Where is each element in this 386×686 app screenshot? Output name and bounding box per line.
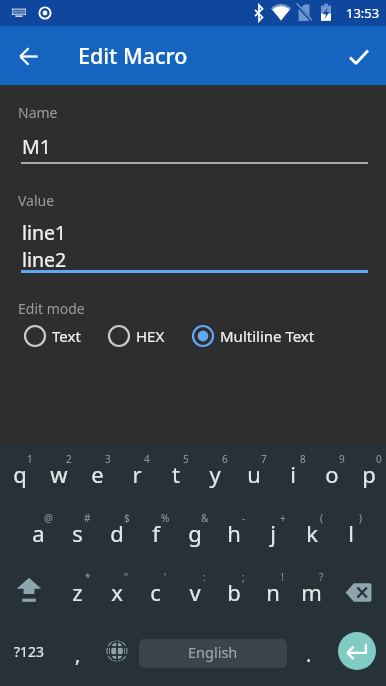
staticText: line1 — [22, 219, 67, 246]
staticText: c — [150, 577, 161, 607]
button[interactable]: a — [19, 504, 58, 560]
button[interactable]: o — [312, 446, 351, 504]
button[interactable]: t — [156, 446, 195, 504]
staticText: 1 — [27, 452, 33, 466]
button[interactable]: s — [58, 504, 97, 560]
button[interactable]: u — [234, 446, 273, 504]
staticText: Edit mode — [18, 299, 85, 318]
staticText: b — [227, 577, 241, 607]
button[interactable]: q — [0, 446, 39, 504]
staticText: h — [227, 518, 241, 548]
button[interactable]: w — [39, 446, 78, 504]
staticText: Text — [52, 326, 81, 346]
staticText: ! — [281, 570, 284, 584]
button[interactable]: g — [175, 504, 214, 560]
staticText: f — [152, 518, 160, 548]
staticText: w — [50, 459, 68, 489]
staticText: $ — [124, 511, 130, 525]
button[interactable]: i — [273, 446, 312, 504]
staticText: s — [72, 518, 83, 548]
staticText: % — [161, 511, 170, 525]
button[interactable]: m — [292, 560, 331, 616]
staticText: r — [132, 459, 142, 489]
staticText: @ — [44, 511, 53, 525]
button[interactable]: v — [175, 560, 214, 616]
staticText: 3 — [105, 452, 111, 466]
staticText: Value — [18, 191, 55, 210]
staticText: ? — [319, 570, 324, 584]
staticText: 7 — [261, 452, 267, 466]
staticText: + — [280, 511, 286, 525]
button[interactable]: r — [117, 446, 156, 504]
button[interactable]: Shift — [0, 560, 58, 616]
staticText: line2 — [22, 246, 67, 273]
button[interactable]: l — [331, 504, 370, 560]
button[interactable]: , — [59, 616, 97, 686]
staticText: 13:53 — [346, 4, 380, 22]
staticText: y — [209, 459, 221, 489]
button[interactable]: x — [97, 560, 136, 616]
staticText: d — [110, 518, 124, 548]
button[interactable]: Enter — [327, 616, 386, 686]
staticText: g — [188, 518, 202, 548]
staticText: Edit Macro — [78, 41, 188, 70]
button[interactable]: k — [292, 504, 331, 560]
staticText: 8 — [300, 452, 306, 466]
button[interactable]: Text — [23, 324, 81, 348]
staticText: 2 — [66, 452, 72, 466]
staticText: # — [84, 511, 91, 525]
button[interactable]: p — [351, 446, 386, 504]
button[interactable]: HEX — [107, 324, 165, 348]
staticText: 6 — [222, 452, 228, 466]
staticText: & — [201, 511, 209, 525]
button[interactable]: Back — [0, 28, 56, 84]
staticText: * — [85, 570, 91, 584]
button[interactable]: z — [58, 560, 97, 616]
staticText: - — [242, 511, 246, 525]
staticText: , — [75, 641, 81, 668]
staticText: 9 — [339, 452, 345, 466]
button[interactable]: f — [136, 504, 175, 560]
button[interactable]: h — [214, 504, 253, 560]
staticText: z — [72, 577, 83, 607]
staticText: u — [247, 459, 261, 489]
staticText: M1 — [22, 133, 51, 160]
staticText: Name — [18, 103, 58, 122]
staticText: t — [172, 459, 180, 489]
staticText: ) — [359, 511, 362, 525]
staticText: ; — [242, 570, 245, 584]
staticText: a — [32, 518, 45, 548]
staticText: Multiline Text — [220, 326, 315, 346]
staticText: m — [301, 577, 322, 607]
button[interactable]: Multiline Text — [191, 324, 315, 348]
staticText: English — [188, 642, 238, 662]
staticText: e — [91, 459, 104, 489]
button[interactable]: Save — [330, 28, 386, 84]
button[interactable]: . — [285, 616, 327, 686]
staticText: . — [306, 641, 312, 668]
staticText: i — [290, 459, 296, 489]
staticText: 5 — [183, 452, 189, 466]
button[interactable]: English — [139, 639, 287, 668]
button[interactable]: j — [253, 504, 292, 560]
staticText: j — [270, 518, 276, 548]
button[interactable]: ?123 — [0, 616, 59, 686]
staticText: n — [266, 577, 280, 607]
staticText: ' — [164, 570, 167, 584]
staticText: q — [13, 459, 27, 489]
button[interactable]: c — [136, 560, 175, 616]
staticText: ?123 — [14, 642, 45, 661]
button[interactable]: e — [78, 446, 117, 504]
button[interactable]: n — [253, 560, 292, 616]
button[interactable]: y — [195, 446, 234, 504]
button[interactable]: b — [214, 560, 253, 616]
staticText: ( — [320, 511, 323, 525]
button[interactable]: d — [97, 504, 136, 560]
staticText: " — [124, 570, 129, 584]
staticText: : — [203, 570, 206, 584]
staticText: o — [325, 459, 339, 489]
staticText: k — [306, 518, 318, 548]
staticText: 4 — [144, 452, 150, 466]
button[interactable]: Backspace — [331, 560, 386, 616]
button[interactable]: Change language — [97, 616, 137, 686]
